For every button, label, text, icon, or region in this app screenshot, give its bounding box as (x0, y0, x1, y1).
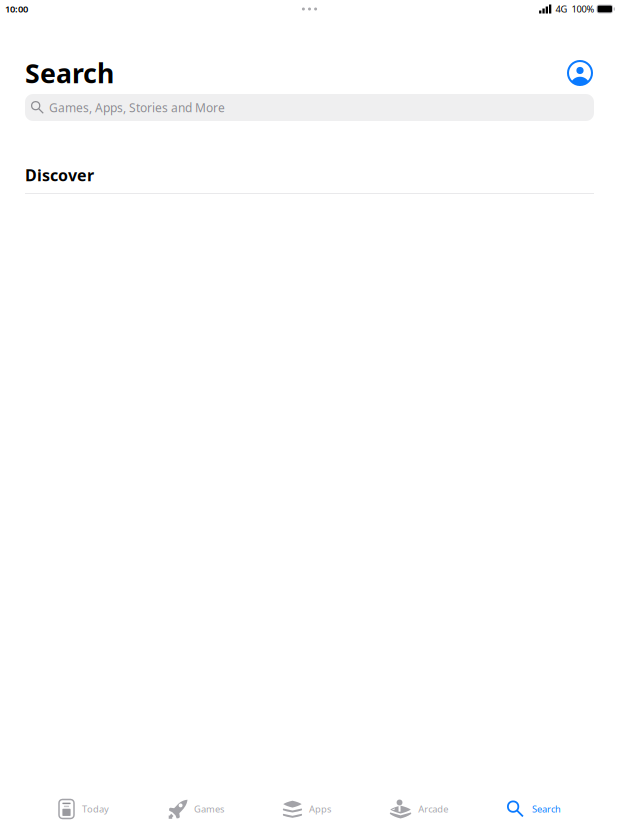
staticText: Search (532, 803, 561, 815)
staticText: Games, Apps, Stories and More (49, 99, 225, 115)
staticText: 100% (572, 3, 595, 15)
button[interactable]: Games (162, 774, 230, 826)
button[interactable]: Account (563, 56, 597, 90)
button[interactable]: Search (501, 774, 567, 826)
staticText: Discover (25, 164, 94, 186)
staticText: Search (25, 55, 114, 91)
button[interactable]: Today (53, 774, 115, 826)
button[interactable]: Apps (277, 774, 337, 826)
staticText: Arcade (418, 803, 448, 815)
button[interactable]: Games, Apps, Stories and More (25, 94, 594, 121)
button[interactable]: Arcade (384, 774, 454, 826)
staticText: Today (82, 803, 109, 815)
staticText: 10:00 (5, 3, 28, 15)
staticText: Games (194, 803, 224, 815)
staticText: Apps (309, 803, 331, 815)
staticText: 4G (556, 3, 568, 15)
